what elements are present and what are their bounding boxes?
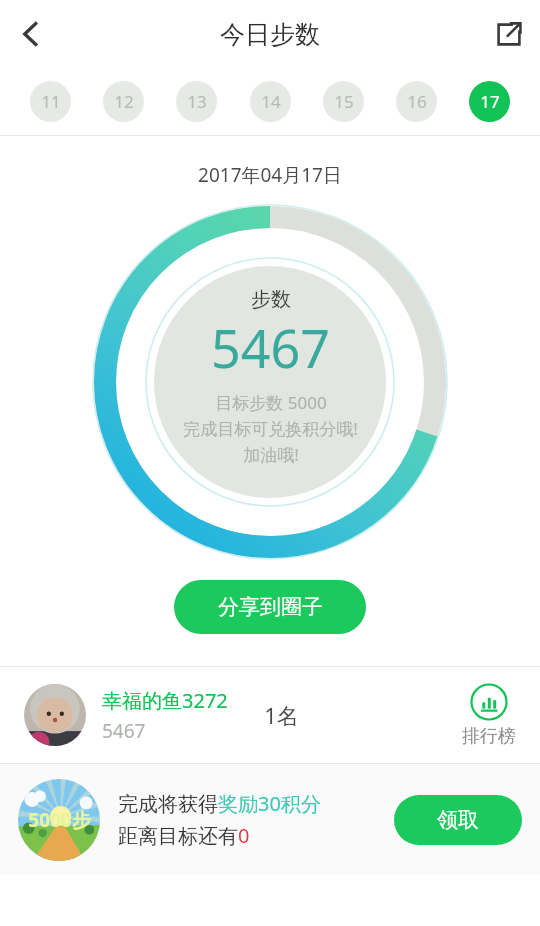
staticText: 11	[41, 90, 61, 113]
staticText: 目标步数 5000	[215, 391, 327, 414]
button[interactable]: 16	[396, 81, 437, 122]
staticText: 分享到圈子	[218, 594, 323, 620]
staticText: 排行榜	[462, 725, 516, 748]
staticText: 步数	[251, 287, 291, 312]
staticText: 12	[114, 90, 134, 113]
staticText: 14	[261, 90, 281, 113]
staticText: 5467	[102, 718, 146, 744]
staticText: 完成目标可兑换积分哦!	[183, 417, 358, 440]
staticText: 16	[407, 90, 427, 113]
button[interactable]: 13	[176, 81, 217, 122]
staticText: 加油哦!	[243, 443, 299, 466]
staticText: 领取	[437, 807, 479, 833]
staticText: 15	[334, 90, 354, 113]
button[interactable]: 11	[30, 81, 71, 122]
button[interactable]: 领取	[394, 795, 522, 845]
staticText: 13	[187, 90, 207, 113]
staticText: 今日步数	[220, 19, 320, 50]
button[interactable]: Back	[0, 3, 62, 65]
button[interactable]: Share	[478, 3, 540, 65]
button[interactable]: 15	[323, 81, 364, 122]
button[interactable]: 幸福的鱼3272	[0, 667, 540, 763]
button[interactable]: 分享到圈子	[174, 580, 366, 634]
button[interactable]: 14	[250, 81, 291, 122]
button[interactable]: 12	[103, 81, 144, 122]
staticText: 距离目标还有0	[118, 822, 250, 849]
staticText: 2017年04月17日	[0, 162, 540, 188]
staticText: 5000步	[28, 807, 91, 833]
staticText: 17	[480, 90, 500, 113]
staticText: 幸福的鱼3272	[102, 687, 228, 714]
staticText: 完成将获得奖励30积分	[118, 790, 321, 817]
staticText: 1名	[264, 700, 299, 730]
button[interactable]: 排行榜	[462, 683, 516, 748]
staticText: 5467	[211, 312, 330, 383]
button[interactable]: 17	[469, 81, 510, 122]
